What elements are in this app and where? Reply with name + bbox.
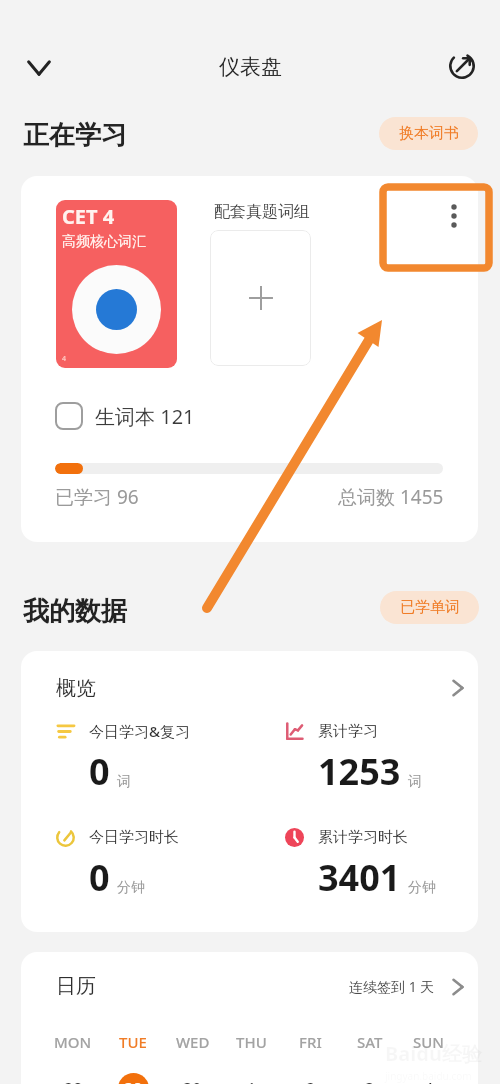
staticText: CET 4 [62,203,115,230]
staticText: 2 [306,1078,316,1084]
staticText: 29 [124,1078,143,1084]
staticText: 我的数据 [23,595,127,628]
staticText: 日历 [56,974,96,999]
button[interactable]: 生词本 121 [55,402,195,430]
button[interactable]: Add word group [210,230,311,366]
staticText: 1253 [318,747,401,796]
button[interactable]: Collapse [14,42,64,92]
staticText: 概览 [56,676,96,701]
staticText: 累计学习时长 [318,828,408,847]
staticText: 累计学习 [318,722,378,741]
button[interactable]: Share [439,43,485,89]
staticText: 生词本 121 [95,403,195,430]
staticText: WED [176,1032,210,1052]
staticText: 已学习 96 [55,484,139,510]
staticText: 高频核心词汇 [62,233,146,251]
button[interactable]: 概览 [21,665,478,711]
staticText: Baidu经验 [385,1040,482,1067]
staticText: 0 [89,747,110,796]
staticText: 4 [62,354,67,364]
staticText: 分钟 [408,879,436,897]
staticText: THU [236,1032,267,1052]
button[interactable]: 换本词书 [379,117,478,150]
staticText: SUN [413,1032,444,1052]
button[interactable]: 已学单词 [380,591,479,624]
staticText: 已学单词 [400,598,460,617]
staticText: MON [54,1032,92,1052]
staticText: TUE [119,1032,147,1052]
staticText: 30 [183,1078,202,1084]
staticText: 1 [247,1078,257,1084]
staticText: 3 [365,1078,375,1084]
staticText: SAT [357,1032,383,1052]
button[interactable]: 日历 [21,964,478,1009]
staticText: 词 [408,773,422,791]
button[interactable]: More options [432,194,476,238]
staticText: 配套真题词组 [214,202,310,222]
staticText: 词 [117,773,131,791]
staticText: 28 [64,1078,83,1084]
staticText: 连续签到 1 天 [349,977,435,996]
staticText: 换本词书 [399,124,459,143]
staticText: 3401 [318,853,401,902]
staticText: 仪表盘 [219,54,282,80]
staticText: FRI [299,1032,322,1052]
staticText: 4 [424,1078,434,1084]
staticText: 正在学习 [23,119,127,152]
button[interactable]: CET 4 [56,200,177,368]
staticText: 今日学习&复习 [89,721,191,741]
staticText: 分钟 [117,879,145,897]
staticText: 今日学习时长 [89,828,179,847]
staticText: 0 [89,853,110,902]
staticText: 总词数 1455 [338,484,444,510]
